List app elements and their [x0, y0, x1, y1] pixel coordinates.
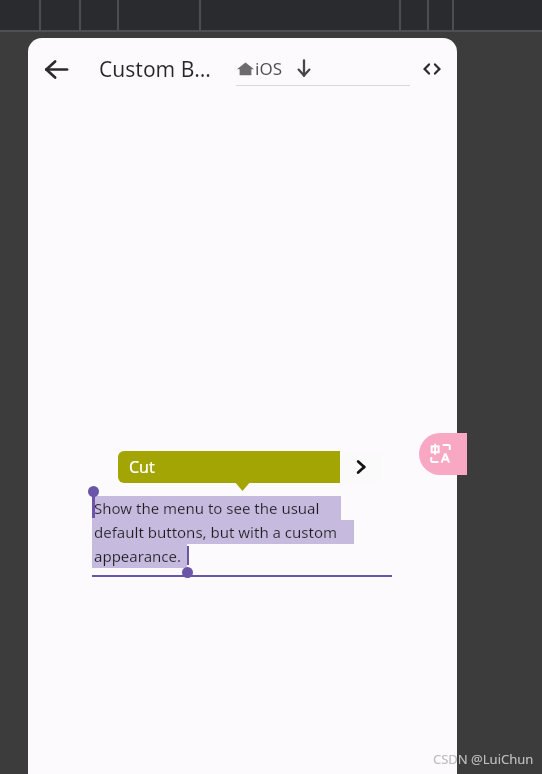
staticText: Show the menu to see the usual [94, 498, 320, 518]
staticText: Custom B… [99, 55, 211, 84]
button[interactable]: Cut [118, 451, 340, 483]
button[interactable]: More menu items [340, 451, 382, 483]
staticText: appearance. [94, 546, 182, 566]
staticText: iOS [255, 57, 282, 80]
button[interactable]: iOS [236, 52, 314, 84]
staticText: default buttons, but with a custom [94, 522, 338, 542]
button[interactable]: Code [416, 53, 448, 85]
staticText: Cut [129, 456, 155, 478]
staticText: CSDN @LuiChun [433, 750, 534, 768]
button[interactable]: Translate [419, 433, 467, 475]
button[interactable]: Back [38, 51, 74, 87]
